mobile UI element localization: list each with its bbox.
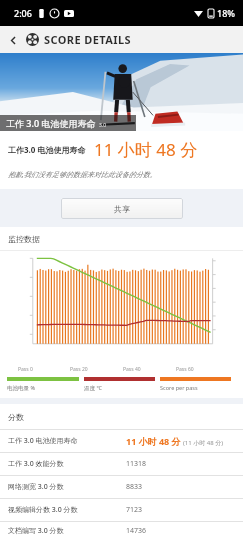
staticText: 7123 [126, 505, 243, 515]
staticText: 11 小时 48 分 [126, 435, 181, 447]
staticText: Score per pass [160, 384, 198, 391]
button[interactable]: 共享 [61, 198, 183, 219]
staticText: 工作 3.0 电池使用寿命 [6, 117, 96, 129]
staticText: 8833 [126, 482, 243, 492]
button[interactable]: 文档编写 3.0 分数 [0, 522, 243, 540]
staticText: 文档编写 3.0 分数 [8, 526, 126, 536]
staticText: 电池电量 % [7, 384, 36, 392]
staticText: 监控数据 [8, 234, 40, 244]
staticText: Pass 40 [123, 366, 141, 373]
button[interactable]: Back [0, 27, 26, 53]
staticText: 分数 [8, 412, 24, 422]
staticText: 18% [217, 7, 235, 19]
staticText: 3.0 [99, 122, 107, 129]
button[interactable]: 工作 3.0 效能分数 [0, 453, 243, 475]
staticText: 抱歉,我们没有足够的数据来对比此设备的分数。 [8, 170, 157, 180]
button[interactable]: 网络测宽 3.0 分数 [0, 476, 243, 498]
staticText: 温度 ℃ [84, 384, 102, 392]
staticText: (11 小时 48 分) [183, 439, 224, 447]
staticText: 14736 [126, 526, 243, 536]
staticText: 2:06 [14, 7, 32, 19]
staticText: 工作3.0 电池使用寿命 [8, 144, 86, 155]
button[interactable]: 工作 3.0 电池使用寿命 [0, 430, 243, 452]
staticText: Pass 20 [70, 366, 88, 373]
staticText: 11318 [126, 459, 243, 469]
button[interactable]: 视频编辑分数 3.0 分数 [0, 499, 243, 521]
staticText: 网络测宽 3.0 分数 [8, 482, 126, 492]
staticText: 工作 3.0 效能分数 [8, 459, 126, 469]
staticText: 视频编辑分数 3.0 分数 [8, 505, 126, 515]
staticText: Pass 60 [176, 366, 194, 373]
staticText: 共享 [114, 204, 130, 214]
staticText: Pass 0 [18, 366, 33, 373]
staticText: 工作 3.0 电池使用寿命 [8, 436, 126, 446]
staticText: 11 小时 48 分 [94, 138, 198, 161]
staticText: SCORE DETAILS [44, 32, 131, 47]
